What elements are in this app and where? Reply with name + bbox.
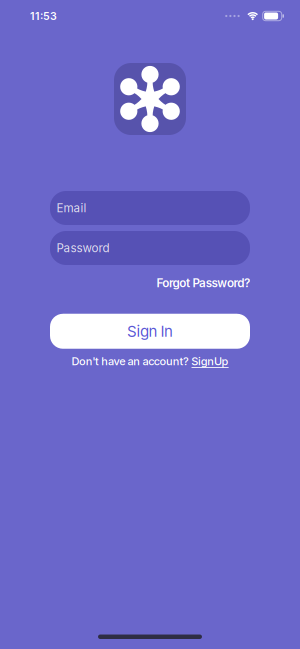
button[interactable]: Email (50, 191, 250, 225)
staticText: Email (56, 201, 86, 215)
staticText: Forgot Password? (156, 276, 250, 290)
button[interactable]: Forgot Password? (50, 276, 250, 290)
staticText: 11:53 (30, 10, 57, 22)
button[interactable]: Don't have an account? SignUp (71, 355, 229, 368)
staticText: Sign In (127, 322, 173, 340)
staticText: Don't have an account? SignUp (71, 355, 229, 368)
button[interactable]: Sign In (50, 314, 250, 349)
button[interactable]: Password (50, 231, 250, 265)
staticText: Password (56, 241, 109, 255)
